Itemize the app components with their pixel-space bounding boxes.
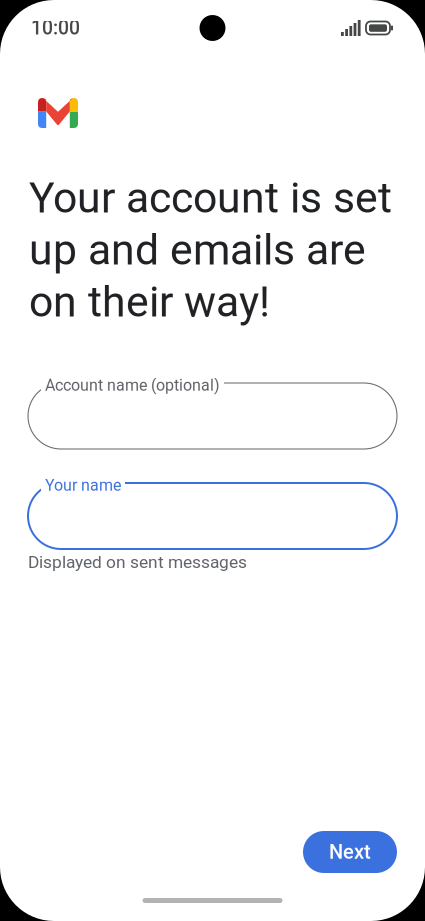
staticText: Next [329, 840, 371, 864]
staticText: Account name (optional) [45, 376, 220, 395]
button[interactable]: Your name [28, 476, 397, 549]
staticText: Your account is set [29, 173, 392, 223]
staticText: on their way! [29, 277, 270, 327]
staticText: up and emails are [29, 225, 366, 275]
button[interactable]: Account name (optional) [28, 376, 397, 449]
staticText: 10:00 [31, 17, 80, 39]
staticText: Displayed on sent messages [28, 552, 247, 572]
staticText: Your name [45, 476, 121, 495]
button[interactable]: Next [303, 831, 397, 873]
